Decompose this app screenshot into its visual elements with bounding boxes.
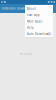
staticText: Help bbox=[27, 26, 34, 29]
button[interactable]: About bbox=[25, 6, 53, 12]
button[interactable]: Help bbox=[25, 24, 53, 31]
staticText: Auto Download bbox=[27, 32, 49, 36]
button[interactable]: More Apps bbox=[25, 18, 53, 24]
button[interactable]: Rate App bbox=[25, 12, 53, 18]
staticText: Rate App bbox=[27, 13, 40, 17]
staticText: About bbox=[27, 7, 36, 10]
button[interactable]: Auto Download bbox=[25, 31, 53, 37]
staticText: More Apps bbox=[27, 20, 42, 23]
staticText: No Items bbox=[19, 52, 31, 55]
staticText: Insta Tube Downloader bbox=[2, 7, 34, 10]
